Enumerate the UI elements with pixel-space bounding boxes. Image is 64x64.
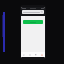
button[interactable]: Saved [34, 53, 38, 57]
button[interactable]: Explore [28, 53, 32, 57]
button[interactable]: Home [22, 53, 26, 57]
button[interactable]: Profile [40, 53, 44, 57]
button[interactable]: Search [22, 10, 44, 14]
button[interactable] [23, 20, 43, 24]
